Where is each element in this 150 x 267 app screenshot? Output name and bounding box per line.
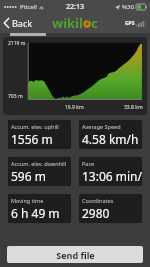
button[interactable]: Send file <box>7 246 143 263</box>
staticText: 2980 <box>82 205 110 221</box>
staticText: c <box>91 14 98 32</box>
staticText: Moving time <box>11 197 44 204</box>
staticText: 33.8 km <box>124 104 143 111</box>
staticText: Accum. elev. uphill <box>11 123 59 130</box>
staticText: 2119 m <box>8 40 26 47</box>
staticText: 22:13 <box>66 2 84 12</box>
staticText: wikil <box>52 14 83 32</box>
button[interactable]: Average Speed <box>78 119 143 150</box>
staticText: 1556 m <box>11 131 53 147</box>
staticText: Coordinates <box>82 197 114 204</box>
staticText: 13:06 min/km <box>82 168 143 184</box>
button[interactable]: Accum. elev. uphill <box>7 119 72 150</box>
staticText: Back <box>12 17 33 29</box>
staticText: 703 m <box>8 93 23 100</box>
staticText: Pticell <box>20 3 37 11</box>
staticText: 16.9 km <box>65 104 84 111</box>
staticText: Pace <box>82 160 95 167</box>
staticText: %30 <box>122 3 134 11</box>
staticText: Send file <box>56 249 95 261</box>
staticText: GPS <box>125 20 135 27</box>
button[interactable]: Back <box>0 15 37 31</box>
button[interactable]: Accum. elev. downhill <box>7 156 72 187</box>
button[interactable]: Moving time <box>7 193 72 224</box>
staticText: 596 m <box>11 168 46 184</box>
button[interactable]: Pace <box>78 156 143 187</box>
button[interactable]: Coordinates <box>78 193 143 224</box>
staticText: 6 h 49 m 15 s <box>11 205 72 221</box>
other: GPS signal <box>125 20 145 27</box>
staticText: 4.58 km/h <box>82 131 139 147</box>
staticText: Average Speed <box>82 123 121 130</box>
staticText: Accum. elev. downhill <box>11 160 67 167</box>
